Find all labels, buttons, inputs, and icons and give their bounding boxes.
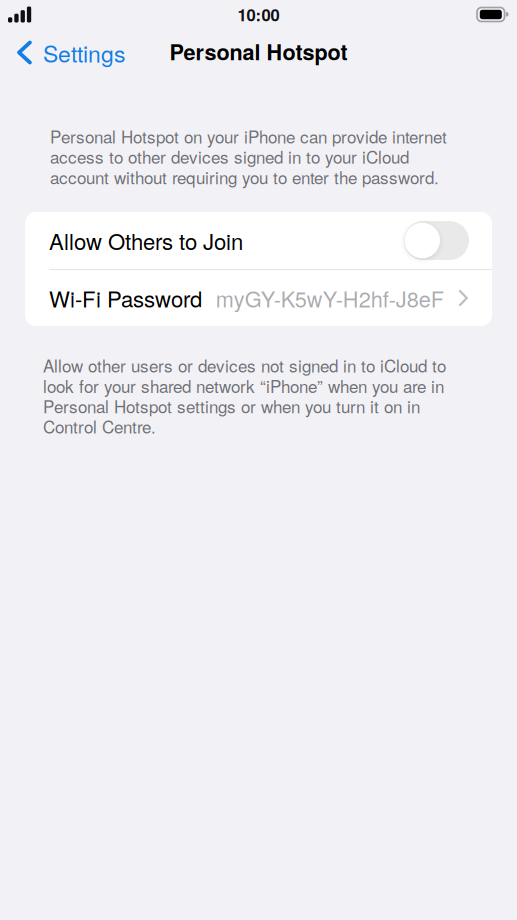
- button[interactable]: Settings: [0, 27, 135, 74]
- staticText: Settings: [43, 36, 125, 69]
- staticText: 10:00: [237, 3, 279, 26]
- staticText: myGY-K5wY-H2hf-J8eF: [216, 282, 444, 314]
- button[interactable]: Wi-Fi Password: [25, 270, 492, 326]
- staticText: Wi-Fi Password: [49, 282, 202, 314]
- staticText: Allow Others to Join: [49, 225, 243, 256]
- staticText: Personal Hotspot: [169, 36, 347, 67]
- button[interactable]: Allow Others to Join: [25, 212, 492, 269]
- staticText: Allow other users or devices not signed …: [43, 353, 446, 438]
- staticText: Personal Hotspot on your iPhone can prov…: [50, 124, 447, 189]
